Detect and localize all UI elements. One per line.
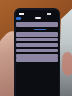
button[interactable] — [16, 43, 58, 47]
button[interactable] — [16, 17, 21, 20]
button[interactable] — [16, 22, 58, 27]
button[interactable] — [16, 32, 58, 37]
button[interactable] — [16, 38, 58, 41]
button[interactable] — [16, 58, 58, 62]
button[interactable] — [16, 49, 58, 52]
button[interactable] — [16, 54, 58, 58]
button[interactable] — [35, 17, 41, 19]
